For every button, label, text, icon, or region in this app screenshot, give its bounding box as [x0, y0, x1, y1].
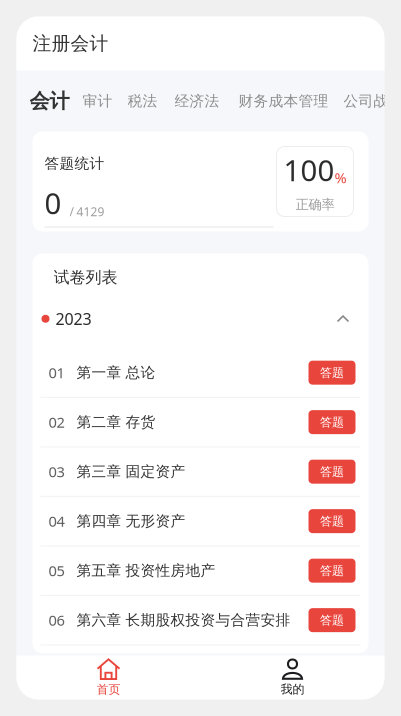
staticText: 06: [48, 610, 64, 630]
staticText: 2023: [55, 308, 91, 329]
staticText: 第三章 固定资产: [76, 463, 185, 481]
button[interactable]: 首页: [16, 658, 200, 697]
staticText: 答题: [320, 563, 344, 578]
button[interactable]: 财务成本管理: [238, 92, 328, 110]
staticText: 05: [48, 561, 64, 580]
staticText: 第五章 投资性房地产: [76, 562, 215, 580]
staticText: 03: [48, 462, 64, 481]
staticText: / 4129: [69, 203, 104, 219]
staticText: 02: [48, 412, 64, 432]
staticText: 100: [283, 150, 334, 189]
button[interactable]: 答题: [308, 608, 355, 632]
staticText: 第一章 总论: [76, 364, 155, 382]
button[interactable]: 会计: [29, 89, 69, 113]
staticText: 答题: [320, 464, 344, 479]
button[interactable]: 税法: [127, 92, 157, 110]
staticText: 试卷列表: [53, 267, 117, 287]
staticText: 首页: [96, 682, 120, 697]
staticText: 答题: [320, 514, 344, 528]
staticText: 第七章 资产减值: [76, 661, 185, 679]
staticText: 答题: [320, 365, 344, 380]
staticText: 会计: [29, 89, 69, 113]
staticText: 01: [48, 363, 64, 382]
staticText: 税法: [127, 92, 157, 110]
staticText: 财务成本管理: [238, 92, 328, 110]
staticText: 答题统计: [44, 154, 104, 172]
button[interactable]: 公司战略与风险管理: [343, 92, 401, 110]
staticText: 经济法: [174, 92, 219, 110]
staticText: 第二章 存货: [76, 413, 155, 431]
button[interactable]: 答题: [308, 509, 355, 533]
button[interactable]: 我的: [200, 658, 384, 697]
staticText: 注册会计: [32, 32, 108, 55]
staticText: %: [334, 168, 346, 187]
button[interactable]: 答题: [308, 460, 355, 484]
staticText: 审计: [82, 92, 112, 110]
staticText: 答题: [320, 613, 344, 627]
staticText: 公司战略与风险管理: [343, 92, 401, 110]
staticText: 第四章 无形资产: [76, 512, 185, 530]
staticText: 04: [48, 511, 64, 531]
staticText: 我的: [280, 682, 304, 697]
button[interactable]: 答题: [308, 410, 355, 434]
staticText: 正确率: [295, 196, 334, 213]
button[interactable]: 经济法: [174, 92, 219, 110]
staticText: 0: [44, 183, 61, 222]
staticText: 答题: [320, 415, 344, 429]
button[interactable]: 答题: [308, 559, 355, 583]
staticText: 第六章 长期股权投资与合营安排: [76, 611, 290, 629]
button[interactable]: 2023: [32, 308, 368, 329]
button[interactable]: 审计: [82, 92, 112, 110]
button[interactable]: 答题: [308, 361, 355, 385]
